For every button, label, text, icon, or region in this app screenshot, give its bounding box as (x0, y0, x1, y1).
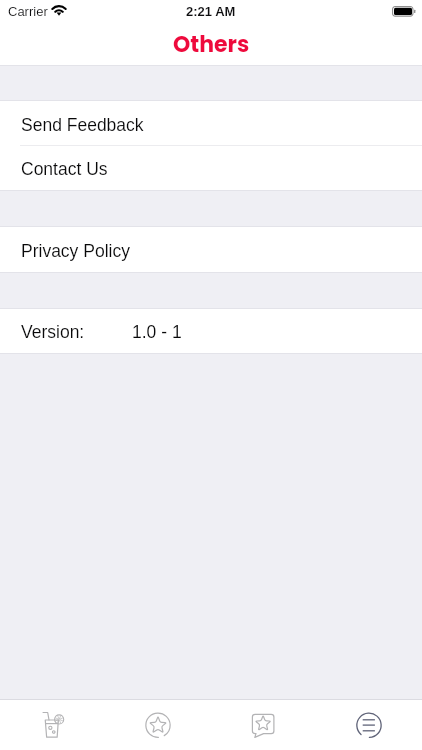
button[interactable]: Reviews (210, 700, 316, 750)
button[interactable]: Send Feedback (0, 101, 422, 146)
staticText: Others (173, 29, 250, 60)
staticText: 1.0 - 1 (132, 322, 182, 342)
button[interactable]: More (316, 700, 422, 750)
button[interactable]: Favourites (105, 700, 210, 750)
button[interactable]: Contact Us (0, 146, 422, 190)
staticText: Version: (21, 322, 85, 342)
button[interactable]: Privacy Policy (0, 227, 422, 272)
button[interactable]: Drinks (0, 700, 105, 750)
staticText: Privacy Policy (21, 241, 130, 261)
staticText: Carrier (8, 4, 48, 19)
staticText: Send Feedback (21, 115, 144, 135)
staticText: 2:21 AM (186, 4, 236, 19)
staticText: Contact Us (21, 159, 108, 179)
